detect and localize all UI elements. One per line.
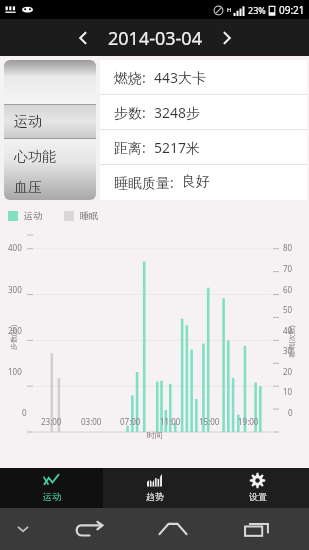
staticText: H [227, 6, 232, 14]
staticText: 睡眠(次数) [286, 324, 296, 357]
button[interactable]: Next day [212, 23, 242, 53]
button[interactable]: 趋势 [103, 468, 206, 508]
staticText: 步数(步) [9, 324, 19, 350]
staticText: 50 [283, 304, 293, 315]
staticText: 70 [283, 263, 293, 274]
button[interactable]: 距离: [100, 130, 307, 164]
button[interactable]: 设置 [206, 468, 309, 508]
staticText: 23:00 [41, 416, 62, 427]
staticText: 30 [283, 345, 293, 356]
staticText: 睡眠质量: [114, 173, 174, 192]
staticText: 血压 [14, 179, 42, 197]
staticText: 2014-03-04 [108, 26, 202, 51]
staticText: 19:00 [238, 416, 259, 427]
staticText: 步数: [114, 103, 146, 122]
staticText: 23% [248, 4, 266, 16]
button[interactable]: 运动 [0, 468, 103, 508]
staticText: 运动 [24, 210, 42, 221]
button[interactable]: 步数: [100, 95, 307, 129]
staticText: 时间 [147, 430, 163, 440]
staticText: 良好 [182, 173, 210, 191]
staticText: 09:21 [279, 3, 305, 17]
staticText: 20 [283, 366, 293, 377]
staticText: 80 [283, 242, 293, 253]
staticText: 5217米 [154, 138, 201, 157]
staticText: 443大卡 [154, 68, 207, 87]
staticText: 距离: [114, 138, 146, 157]
button[interactable]: 睡眠质量: [100, 165, 307, 199]
staticText: 睡眠 [80, 210, 98, 221]
staticText: 运动 [14, 113, 42, 131]
staticText: 15:00 [199, 416, 220, 427]
staticText: 3248步 [154, 103, 201, 122]
staticText: 60 [283, 284, 293, 295]
staticText: 10 [283, 386, 293, 397]
staticText: 0 [22, 407, 27, 418]
button[interactable]: 燃烧: [100, 60, 307, 94]
staticText: 11:00 [160, 416, 181, 427]
staticText: 03:00 [81, 416, 102, 427]
staticText: 400 [8, 242, 22, 253]
staticText: 趋势 [146, 491, 164, 502]
staticText: 设置 [249, 491, 267, 502]
button[interactable]: 运动 [4, 60, 96, 200]
staticText: 200 [8, 325, 22, 336]
staticText: 心功能 [14, 148, 56, 166]
staticText: 07:00 [120, 416, 141, 427]
staticText: 40 [283, 325, 293, 336]
button[interactable]: Previous day [68, 23, 98, 53]
staticText: 300 [8, 284, 22, 295]
staticText: 燃烧: [114, 68, 146, 87]
staticText: 100 [8, 366, 22, 377]
staticText: 0 [288, 407, 293, 418]
staticText: 运动 [43, 491, 61, 502]
